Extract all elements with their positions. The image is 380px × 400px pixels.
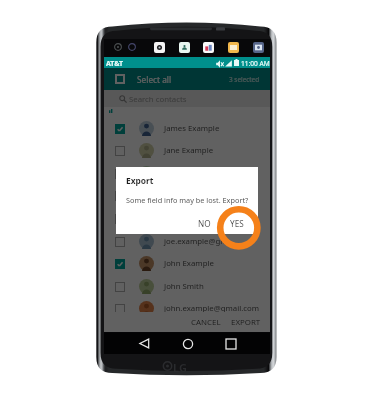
staticText: NO [198,218,211,229]
button[interactable]: joe.example@gm... [104,230,270,253]
button[interactable]: NO [192,215,217,232]
button[interactable]: EXPORT [225,313,267,332]
staticText: Some field info may be lost. Export? [126,195,249,205]
staticText: YES [230,218,244,229]
staticText: John Example [164,258,214,269]
button[interactable]: YES [224,215,250,232]
staticText: Jane Example [164,145,214,156]
staticText: 11:00 AM [241,59,270,68]
staticText: EXPORT [231,317,261,328]
button[interactable]: jim.example2@gmail.com [104,207,270,230]
staticText: jim.example@gmail.com [164,190,254,201]
button[interactable]: john.example@gmail.com [104,297,270,320]
staticText: Select all [137,74,172,85]
staticText: joe.example@gm... [164,236,234,247]
button[interactable]: Recent apps [220,333,241,354]
button[interactable]: Home [177,333,198,354]
staticText: Export [126,175,154,186]
button[interactable]: Jane Example [104,139,270,162]
button[interactable]: James Example [104,117,270,140]
staticText: John Smith [164,281,204,292]
button[interactable]: Back [134,333,155,354]
button[interactable]: jim.example@gmail.com [104,184,270,207]
staticText: AT&T [106,59,124,69]
button[interactable]: jane.example@gmail.com [104,162,270,185]
button[interactable]: John Smith [104,275,270,298]
staticText: jim.example2@gmail.com [164,213,259,224]
button[interactable]: CANCEL [185,313,227,332]
button[interactable]: Select all [104,68,270,90]
staticText: LG [173,360,187,375]
staticText: jane.example@gmail.com [164,168,259,179]
staticText: 3 selected [229,75,260,84]
staticText: john.example@gmail.com [164,303,260,314]
staticText: Search contacts [129,94,187,105]
staticText: James Example [164,123,220,134]
staticText: CANCEL [191,317,221,328]
button[interactable]: John Example [104,252,270,275]
